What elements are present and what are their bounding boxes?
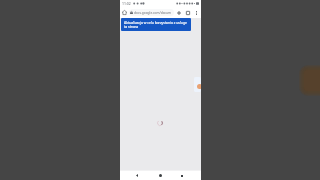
button[interactable]: Aktualizacja w celu korzystania z usluge…	[121, 18, 191, 31]
staticText: 11:02	[122, 1, 131, 6]
button[interactable]: Recent apps	[176, 171, 188, 180]
button[interactable]: Home	[120, 7, 129, 18]
button[interactable]: Page action	[194, 77, 201, 92]
staticText: docs.google.com/docum	[134, 11, 172, 15]
button[interactable]: Home	[154, 171, 166, 180]
button[interactable]: New tab	[174, 7, 183, 18]
button[interactable]: Tabs	[183, 7, 192, 18]
button[interactable]: More options	[192, 7, 201, 18]
button[interactable]: docs.google.com/docum	[129, 9, 174, 16]
staticText: Aktualizacja w celu korzystania z usluge…	[124, 20, 188, 29]
button[interactable]: Back	[131, 171, 143, 180]
